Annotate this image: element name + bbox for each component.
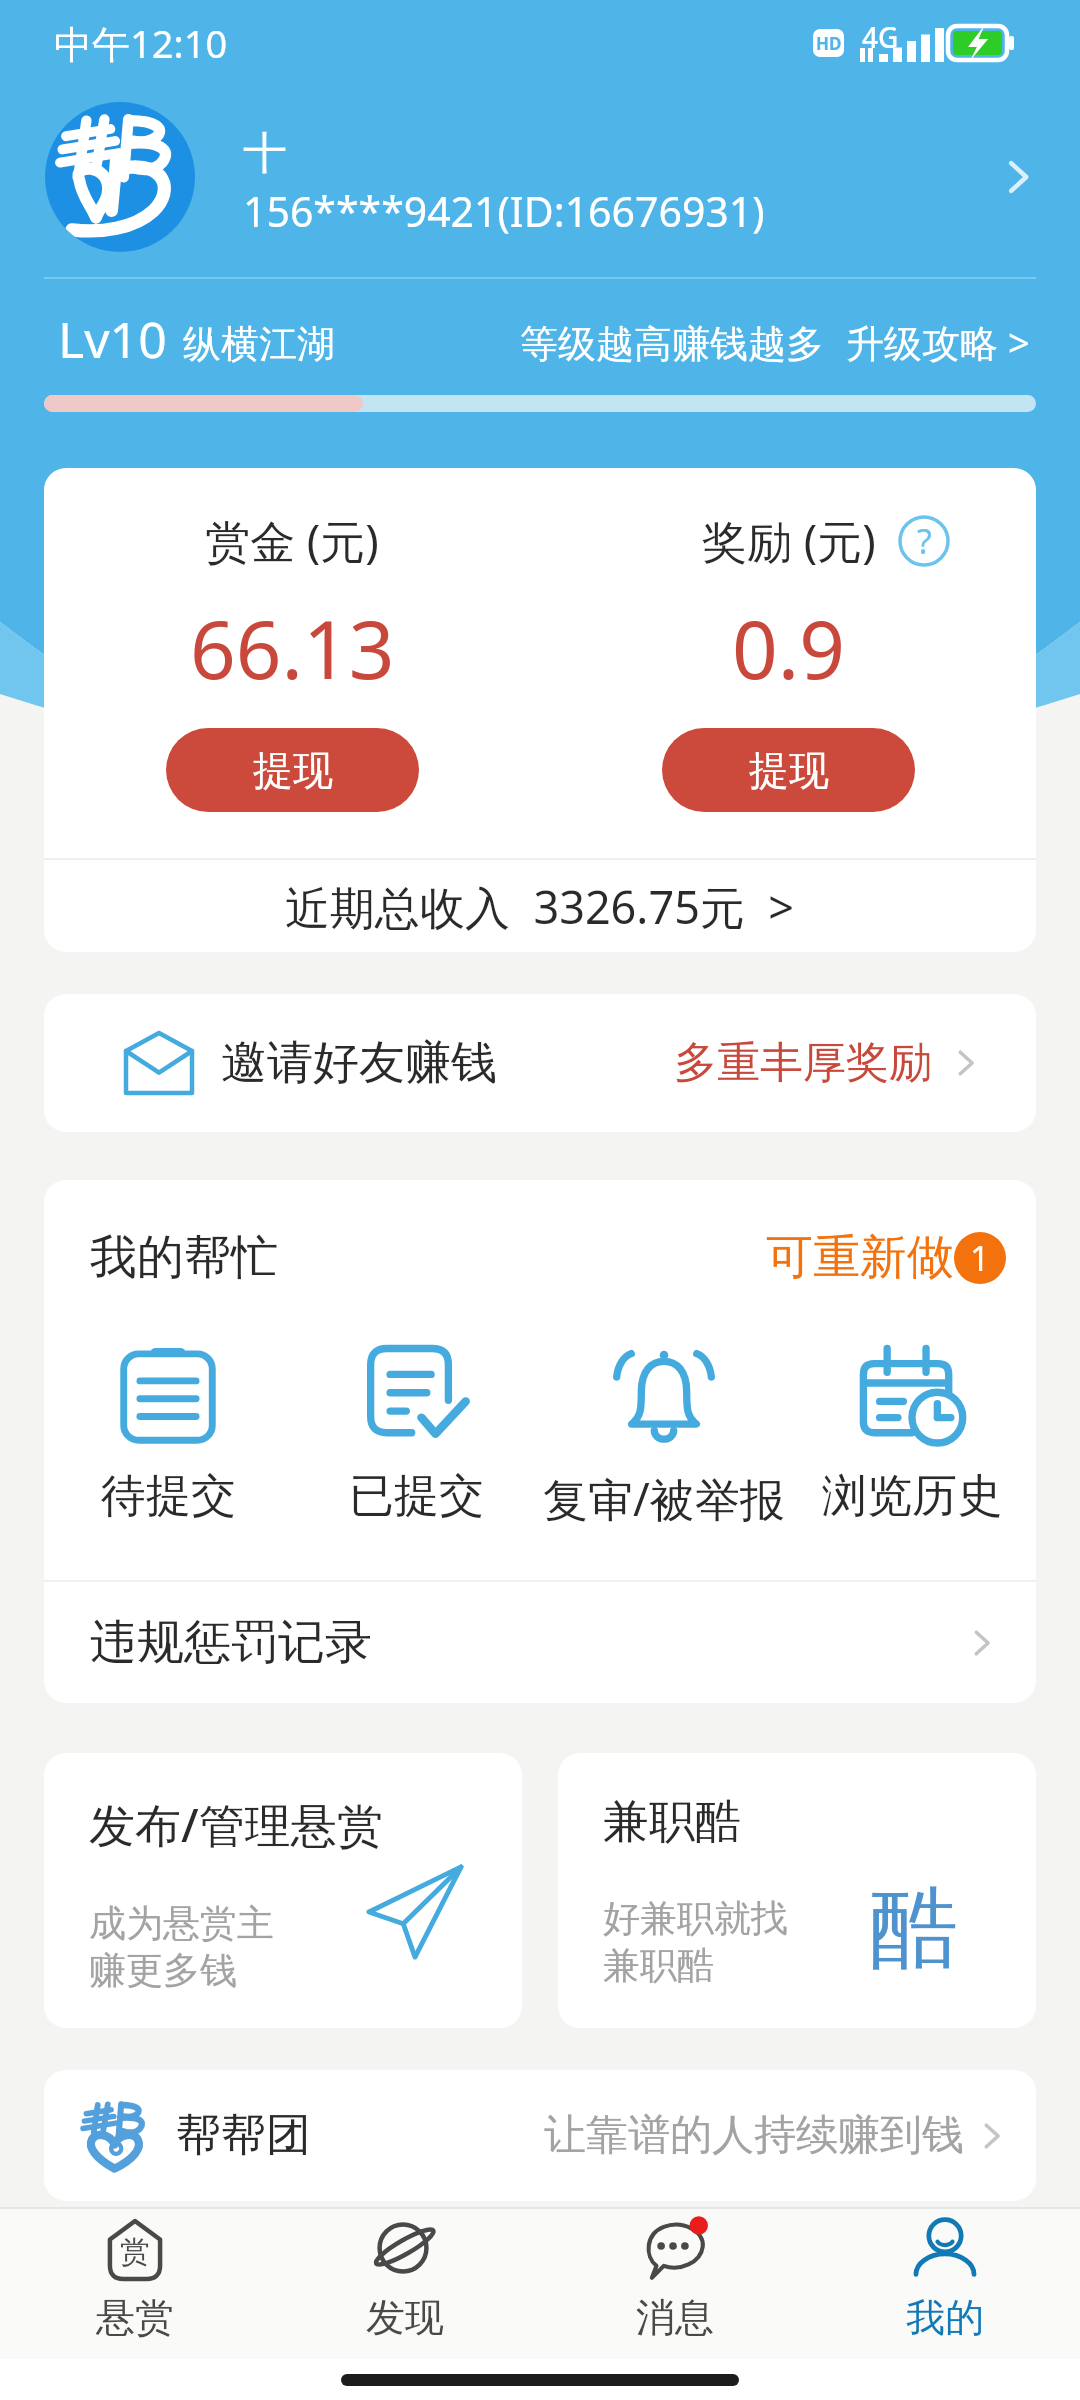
staticText: 多重丰厚奖励 bbox=[674, 1036, 932, 1090]
button[interactable]: 提现 bbox=[662, 728, 915, 812]
button[interactable]: 发现 bbox=[270, 2209, 540, 2359]
staticText: 复审/被举报 bbox=[543, 1468, 785, 1529]
staticText: 0.9 bbox=[732, 593, 845, 702]
button[interactable]: 待提交 bbox=[44, 1290, 292, 1580]
staticText: 赏 bbox=[120, 2233, 150, 2271]
staticText: 帮帮团 bbox=[176, 2107, 311, 2164]
staticText: 156****9421(ID:16676931) bbox=[243, 183, 765, 239]
button[interactable]: 提现 bbox=[166, 728, 419, 812]
staticText: 近期总收入 3326.75元 > bbox=[285, 876, 795, 937]
staticText: 消息 bbox=[636, 2293, 714, 2342]
staticText: 成为悬赏主 赚更多钱 bbox=[89, 1900, 274, 1994]
staticText: 4G bbox=[862, 18, 899, 56]
staticText: 悬赏 bbox=[96, 2293, 174, 2342]
staticText: 违规惩罚记录 bbox=[90, 1613, 372, 1672]
staticText: 等级越高赚钱越多 bbox=[520, 320, 824, 368]
staticText: 已提交 bbox=[349, 1468, 484, 1525]
button[interactable]: 近期总收入 3326.75元 > bbox=[44, 860, 1036, 952]
staticText: 我的帮忙 bbox=[90, 1228, 278, 1287]
button[interactable]: 已提交 bbox=[292, 1290, 540, 1580]
button[interactable]: 可重新做 bbox=[766, 1228, 1006, 1287]
staticText: 发现 bbox=[366, 2293, 444, 2342]
button[interactable]: 复审/被举报 bbox=[540, 1290, 788, 1580]
staticText: 我的 bbox=[906, 2293, 984, 2342]
staticText: 中午12:10 bbox=[54, 17, 228, 69]
staticText: HD bbox=[816, 32, 842, 55]
staticText: 提现 bbox=[749, 745, 829, 795]
staticText: 1 bbox=[970, 1235, 990, 1281]
other: 个人资料 bbox=[998, 154, 1044, 200]
staticText: Lv10 bbox=[58, 305, 167, 373]
staticText: 待提交 bbox=[101, 1468, 236, 1525]
staticText: 邀请好友赚钱 bbox=[221, 1034, 497, 1092]
staticText: 发布/管理悬赏 bbox=[89, 1793, 383, 1856]
button[interactable]: 升级攻略 > bbox=[846, 316, 1030, 373]
staticText: 纵横江湖 bbox=[183, 320, 335, 368]
button[interactable]: 十 bbox=[0, 86, 1080, 268]
staticText: 浏览历史 bbox=[822, 1468, 1002, 1525]
button[interactable]: 赏 bbox=[0, 2209, 270, 2359]
staticText: 十 bbox=[243, 126, 287, 181]
staticText: 让靠谱的人持续赚到钱 bbox=[544, 2109, 964, 2162]
button[interactable]: 我的 bbox=[810, 2209, 1080, 2359]
button[interactable]: 浏览历史 bbox=[788, 1290, 1036, 1580]
button[interactable]: 消息 bbox=[540, 2209, 810, 2359]
button[interactable]: 发布/管理悬赏 bbox=[44, 1753, 522, 2028]
button[interactable]: 帮助 bbox=[898, 515, 950, 567]
button[interactable]: 兼职酷 bbox=[558, 1753, 1036, 2028]
staticText: 好兼职就找 兼职酷 bbox=[603, 1895, 788, 1989]
button[interactable]: 帮帮团 bbox=[44, 2070, 1036, 2201]
staticText: 66.13 bbox=[190, 593, 395, 702]
staticText: ? bbox=[917, 518, 932, 564]
staticText: 奖励 (元) bbox=[702, 510, 876, 571]
staticText: 兼职酷 bbox=[603, 1793, 741, 1851]
staticText: 可重新做 bbox=[766, 1228, 954, 1287]
staticText: 酷 bbox=[870, 1873, 958, 1984]
staticText: 提现 bbox=[253, 745, 333, 795]
staticText: 赏金 (元) bbox=[205, 510, 379, 571]
button[interactable]: 邀请好友赚钱 bbox=[44, 994, 1036, 1132]
button[interactable]: 违规惩罚记录 bbox=[44, 1582, 1036, 1703]
